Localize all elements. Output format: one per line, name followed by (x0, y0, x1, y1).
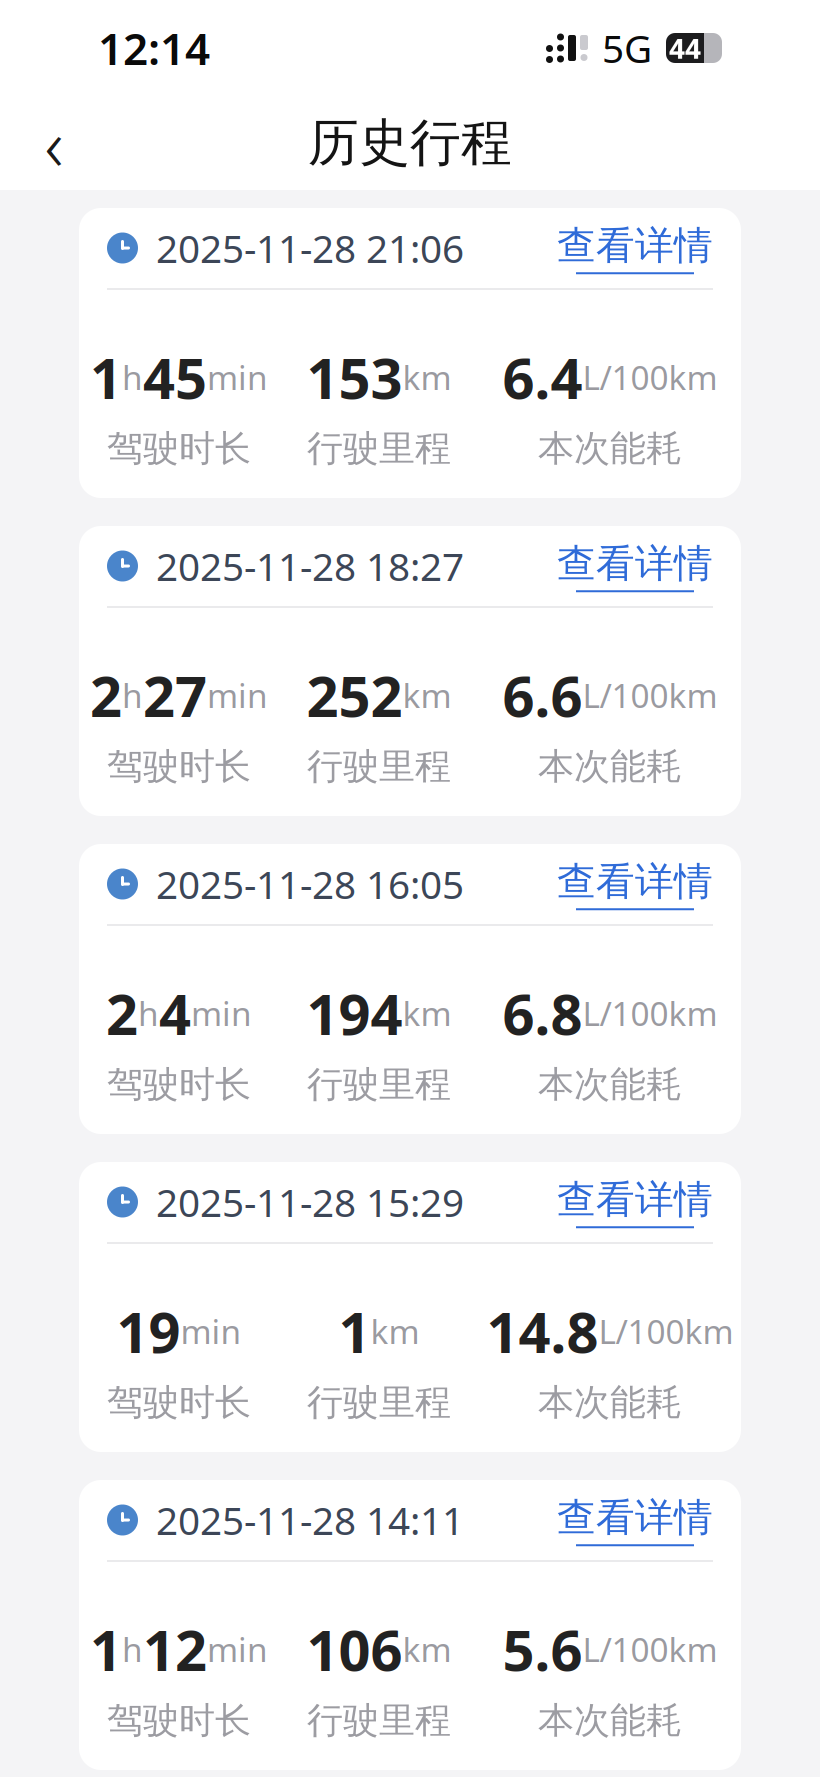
staticText: 106 (306, 1612, 402, 1686)
staticText: h (122, 673, 143, 717)
staticText: km (402, 673, 451, 717)
staticText: 历史行程 (308, 112, 512, 174)
staticText: 驾驶时长 (107, 1062, 251, 1107)
staticText: 2025-11-28 21:06 (156, 222, 464, 274)
staticText: 194 (306, 976, 402, 1050)
staticText: km (370, 1309, 419, 1353)
staticText: 153 (306, 340, 402, 414)
staticText: 252 (306, 658, 402, 732)
staticText: 本次能耗 (538, 744, 682, 789)
staticText: 驾驶时长 (107, 744, 251, 789)
button[interactable]: 查看详情 (557, 540, 713, 592)
staticText: 行驶里程 (307, 1698, 451, 1743)
staticText: min (180, 1309, 241, 1353)
staticText: 驾驶时长 (107, 1698, 251, 1743)
staticText: L/100km (598, 1309, 733, 1353)
staticText: 2025-11-28 18:27 (156, 540, 464, 592)
staticText: 本次能耗 (538, 426, 682, 471)
staticText: 2025-11-28 15:29 (156, 1176, 464, 1228)
staticText: min (191, 991, 252, 1035)
button[interactable]: 查看详情 (557, 222, 713, 274)
staticText: 19 (116, 1294, 180, 1368)
staticText: 查看详情 (557, 540, 713, 587)
staticText: 5.6 (502, 1612, 582, 1686)
staticText: 驾驶时长 (107, 1380, 251, 1425)
staticText: km (402, 991, 451, 1035)
staticText: km (402, 355, 451, 399)
staticText: 查看详情 (557, 1494, 713, 1541)
staticText: 本次能耗 (538, 1062, 682, 1107)
staticText: 驾驶时长 (107, 426, 251, 471)
button[interactable]: 查看详情 (557, 858, 713, 910)
staticText: 12 (143, 1612, 207, 1686)
staticText: h (122, 1627, 143, 1671)
staticText: 1 (90, 340, 122, 414)
staticText: L/100km (582, 673, 717, 717)
staticText: 45 (143, 340, 207, 414)
staticText: 2 (106, 976, 138, 1050)
staticText: 行驶里程 (307, 1062, 451, 1107)
staticText: 行驶里程 (307, 1380, 451, 1425)
staticText: 4 (159, 976, 191, 1050)
staticText: min (207, 1627, 268, 1671)
staticText: 行驶里程 (307, 426, 451, 471)
staticText: 2025-11-28 16:05 (156, 858, 464, 910)
staticText: 本次能耗 (538, 1380, 682, 1425)
staticText: 1 (90, 1612, 122, 1686)
staticText: km (402, 1627, 451, 1671)
staticText: min (207, 355, 268, 399)
staticText: L/100km (582, 355, 717, 399)
staticText: 1 (338, 1294, 370, 1368)
staticText: 6.8 (502, 976, 582, 1050)
staticText: 查看详情 (557, 1176, 713, 1223)
staticText: 2 (90, 658, 122, 732)
button[interactable]: Back (14, 103, 94, 183)
staticText: 12:14 (98, 19, 210, 77)
staticText: 44 (669, 29, 701, 67)
staticText: 行驶里程 (307, 744, 451, 789)
staticText: 14.8 (486, 1294, 598, 1368)
staticText: 6.4 (502, 340, 582, 414)
staticText: 查看详情 (557, 858, 713, 905)
button[interactable]: 查看详情 (557, 1494, 713, 1546)
staticText: h (122, 355, 143, 399)
staticText: 查看详情 (557, 222, 713, 269)
staticText: h (138, 991, 159, 1035)
staticText: ‹ (44, 95, 63, 191)
button[interactable]: 查看详情 (557, 1176, 713, 1228)
staticText: L/100km (582, 1627, 717, 1671)
staticText: 27 (143, 658, 207, 732)
staticText: 5G (602, 22, 652, 74)
staticText: min (207, 673, 268, 717)
staticText: L/100km (582, 991, 717, 1035)
staticText: 6.6 (502, 658, 582, 732)
staticText: 本次能耗 (538, 1698, 682, 1743)
staticText: 2025-11-28 14:11 (156, 1494, 464, 1546)
